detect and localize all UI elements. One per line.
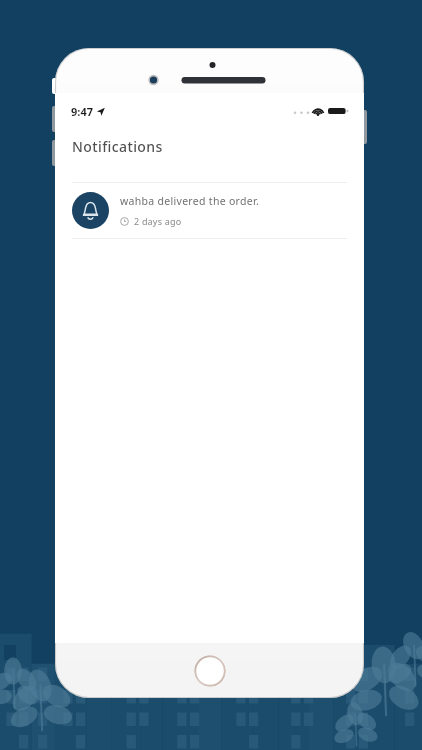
staticText: wahba delivered the order. — [120, 194, 260, 208]
button[interactable]: Home — [194, 655, 226, 687]
staticText: 9:47 — [71, 104, 93, 119]
staticText: Notifications — [72, 137, 163, 156]
button[interactable]: wahba delivered the order. — [55, 182, 364, 239]
staticText: 2 days ago — [134, 215, 182, 227]
